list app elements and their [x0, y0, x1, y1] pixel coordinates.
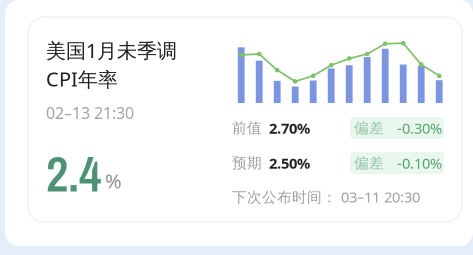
staticText: 2.4 — [46, 140, 101, 207]
staticText: 前值 — [232, 119, 262, 137]
staticText: 02–13 21:30 — [46, 102, 134, 123]
staticText: -0.10% — [397, 153, 442, 173]
staticText: 偏差 — [354, 119, 384, 137]
staticText: 2.50% — [269, 153, 310, 173]
staticText: 预期 — [232, 154, 262, 172]
staticText: % — [105, 167, 122, 194]
staticText: 美国1月未季调 — [46, 37, 177, 64]
staticText: CPI年率 — [46, 66, 118, 92]
staticText: 下次公布时间： 03–11 20:30 — [232, 187, 420, 206]
staticText: 偏差 — [354, 154, 384, 172]
staticText: -0.30% — [397, 118, 442, 138]
staticText: 2.70% — [269, 118, 310, 138]
